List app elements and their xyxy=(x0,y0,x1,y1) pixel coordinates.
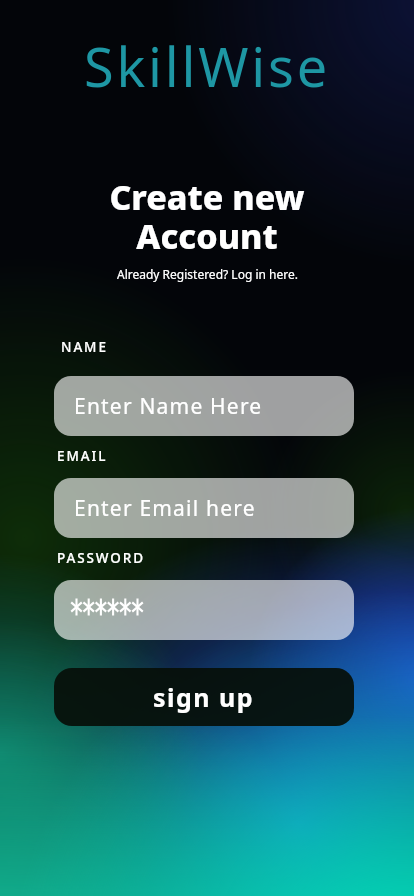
button[interactable] xyxy=(54,580,354,640)
staticText: NAME xyxy=(61,338,108,356)
staticText: Create new Account xyxy=(109,174,305,259)
button[interactable]: Enter Email here xyxy=(54,478,354,538)
staticText: Enter Email here xyxy=(74,494,256,523)
button[interactable]: sign up xyxy=(54,668,354,726)
staticText: EMAIL xyxy=(57,447,108,465)
staticText: PASSWORD xyxy=(57,549,146,567)
staticText: sign up xyxy=(153,680,255,714)
button[interactable]: Enter Name Here xyxy=(54,376,354,436)
button[interactable]: Already Registered? Log in here. xyxy=(117,266,298,282)
staticText: SkillWise xyxy=(84,29,330,103)
staticText: Enter Name Here xyxy=(74,392,263,421)
